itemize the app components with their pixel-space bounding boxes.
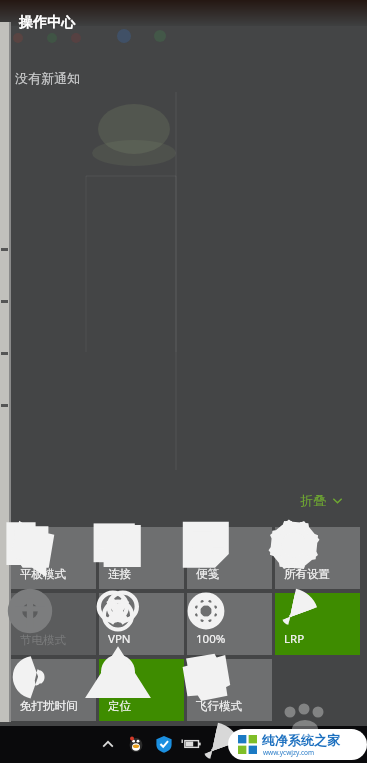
staticText: VPN (108, 631, 131, 647)
button[interactable]: 100% (187, 593, 272, 655)
button[interactable]: Battery (180, 737, 202, 751)
button[interactable]: 连接 (99, 527, 184, 589)
button[interactable]: 折叠 (300, 492, 343, 508)
button[interactable]: 免打扰时间 (11, 659, 96, 721)
button[interactable]: Security (154, 734, 174, 754)
button[interactable]: 便笺 (187, 527, 272, 589)
button[interactable]: LRP (275, 593, 360, 655)
staticText: 没有新通知 (15, 70, 80, 86)
staticText: 纯净系统之家 (262, 732, 340, 748)
button[interactable]: 平板模式 (11, 527, 96, 589)
staticText: 平板模式 (20, 567, 66, 581)
staticText: 免打扰时间 (20, 699, 78, 713)
staticText: 连接 (108, 567, 131, 581)
button[interactable]: 节电模式 (11, 593, 96, 655)
staticText: www.ycwjzy.com (263, 748, 315, 757)
button[interactable]: 所有设置 (275, 527, 360, 589)
staticText: 100% (196, 631, 226, 647)
button[interactable]: Network (206, 735, 226, 755)
staticText: 飞行模式 (196, 699, 242, 713)
staticText: 所有设置 (284, 567, 330, 581)
staticText: 折叠 (300, 492, 326, 508)
staticText: LRP (284, 631, 305, 647)
button[interactable]: Show hidden icons (98, 735, 118, 755)
button[interactable]: 飞行模式 (187, 659, 272, 721)
button[interactable]: 定位 (99, 659, 184, 721)
button[interactable]: VPN (99, 593, 184, 655)
staticText: 操作中心 (19, 14, 75, 32)
staticText: 便笺 (196, 567, 219, 581)
staticText: 定位 (108, 699, 131, 713)
staticText: 节电模式 (20, 633, 66, 647)
button[interactable]: QQ (126, 734, 146, 754)
